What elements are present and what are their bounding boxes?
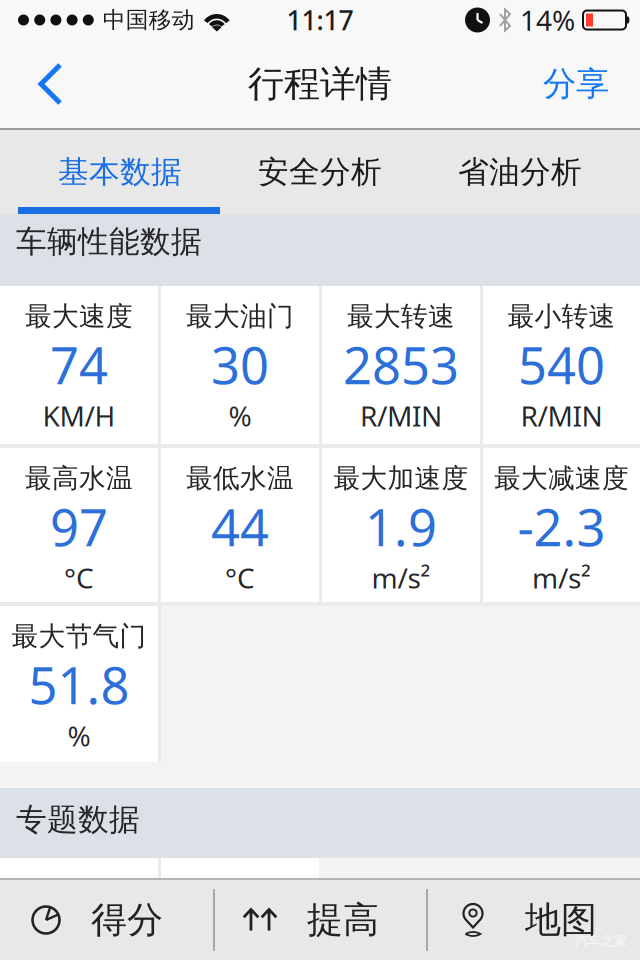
staticText: 11:17 bbox=[286, 2, 353, 38]
button[interactable]: 提高 bbox=[215, 880, 426, 960]
button[interactable]: 基本数据 bbox=[20, 130, 220, 214]
staticText: 14% bbox=[520, 1, 575, 39]
staticText: 74 bbox=[50, 331, 108, 398]
staticText: KM/H bbox=[42, 397, 115, 434]
staticText: 2853 bbox=[343, 331, 459, 398]
staticText: 最大加速度 bbox=[333, 462, 468, 495]
staticText: 行程详情 bbox=[248, 62, 392, 106]
staticText: °C bbox=[64, 559, 94, 596]
staticText: 44 bbox=[211, 493, 269, 560]
staticText: -2.3 bbox=[517, 493, 605, 560]
staticText: R/MIN bbox=[520, 397, 602, 434]
staticText: 地图 bbox=[525, 898, 597, 942]
button[interactable]: 安全分析 bbox=[220, 130, 420, 214]
staticText: 最高水温 bbox=[25, 462, 133, 495]
staticText: m/s² bbox=[371, 559, 430, 596]
staticText: 最小转速 bbox=[507, 300, 615, 333]
staticText: 专题数据 bbox=[16, 801, 140, 839]
staticText: % bbox=[228, 397, 251, 434]
staticText: 540 bbox=[518, 331, 605, 398]
button[interactable]: 省油分析 bbox=[420, 130, 620, 214]
button[interactable] bbox=[0, 40, 70, 128]
staticText: 最大节气门 bbox=[11, 620, 146, 653]
staticText: 中国移动 bbox=[103, 6, 195, 34]
staticText: 30 bbox=[211, 331, 269, 398]
button[interactable]: 得分 bbox=[0, 880, 213, 960]
staticText: 得分 bbox=[91, 898, 163, 942]
staticText: 最大速度 bbox=[25, 300, 133, 333]
staticText: 汽车之家 bbox=[575, 933, 627, 949]
staticText: 1.9 bbox=[365, 493, 437, 560]
staticText: 安全分析 bbox=[258, 153, 382, 191]
staticText: 省油分析 bbox=[458, 153, 582, 191]
staticText: 最低水温 bbox=[186, 462, 294, 495]
staticText: 提高 bbox=[307, 898, 379, 942]
staticText: °C bbox=[225, 559, 255, 596]
staticText: 最大减速度 bbox=[494, 462, 629, 495]
staticText: % bbox=[67, 717, 90, 754]
staticText: 最大转速 bbox=[347, 300, 455, 333]
staticText: 基本数据 bbox=[58, 153, 182, 191]
button[interactable]: 地图 bbox=[428, 880, 640, 960]
staticText: 分享 bbox=[543, 63, 609, 104]
staticText: 最大油门 bbox=[186, 300, 294, 333]
staticText: 97 bbox=[50, 493, 108, 560]
button[interactable]: 分享 bbox=[526, 40, 626, 128]
staticText: R/MIN bbox=[360, 397, 442, 434]
staticText: m/s² bbox=[532, 559, 591, 596]
staticText: 车辆性能数据 bbox=[16, 223, 202, 261]
staticText: 51.8 bbox=[28, 651, 129, 718]
